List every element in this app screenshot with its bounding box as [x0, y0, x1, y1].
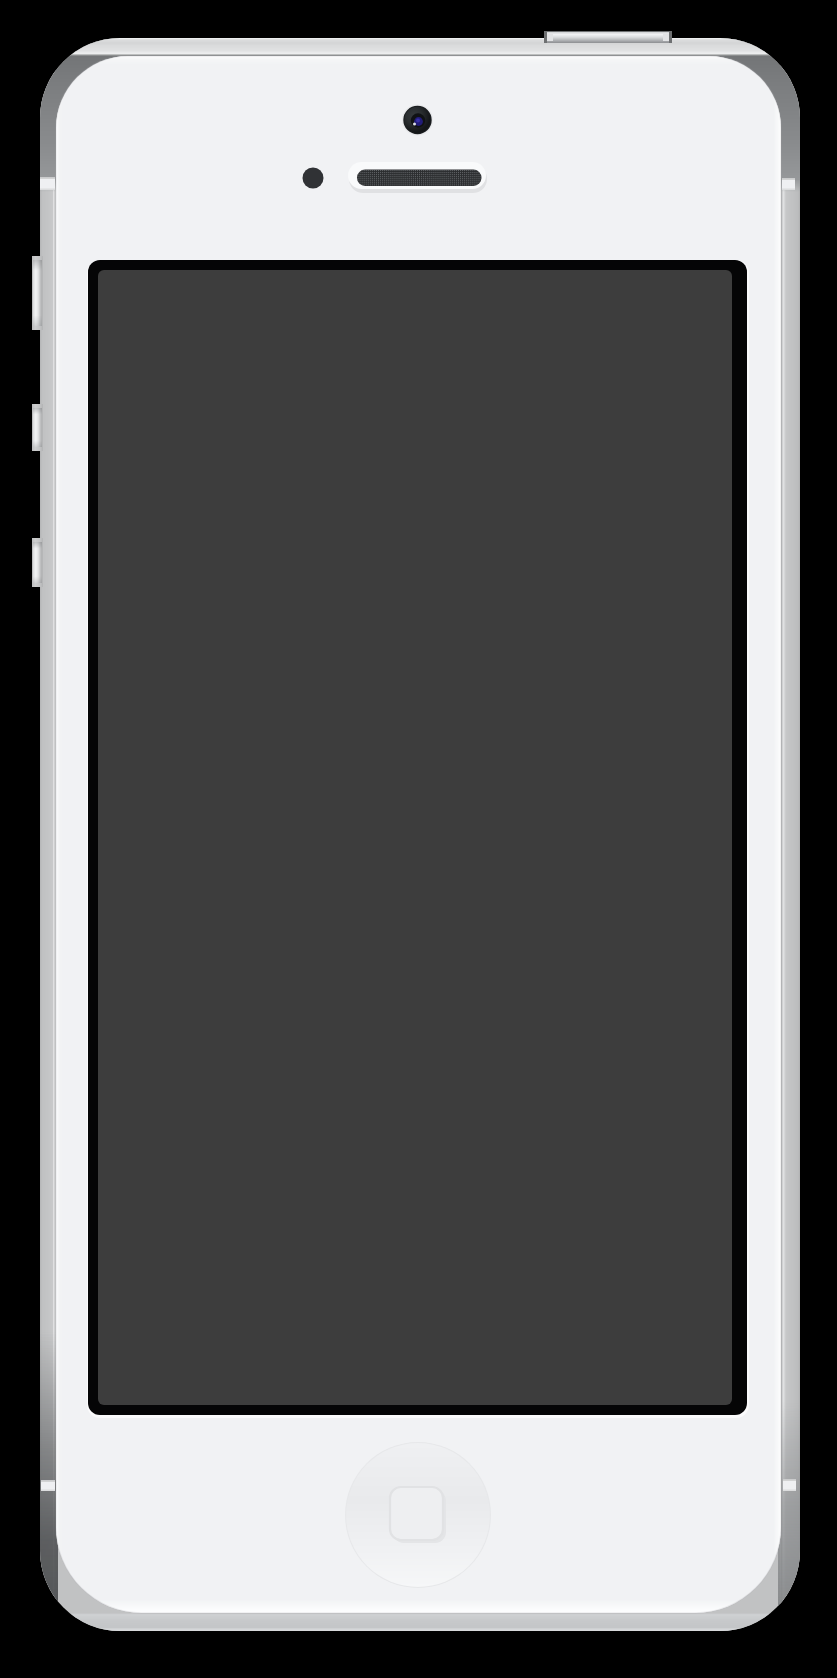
button[interactable]: Volume down [32, 538, 43, 587]
button[interactable]: Power button [544, 29, 672, 45]
button[interactable]: Home button [346, 1443, 490, 1587]
button[interactable]: Ring silent switch [32, 256, 43, 330]
button[interactable]: Volume up [32, 404, 43, 451]
